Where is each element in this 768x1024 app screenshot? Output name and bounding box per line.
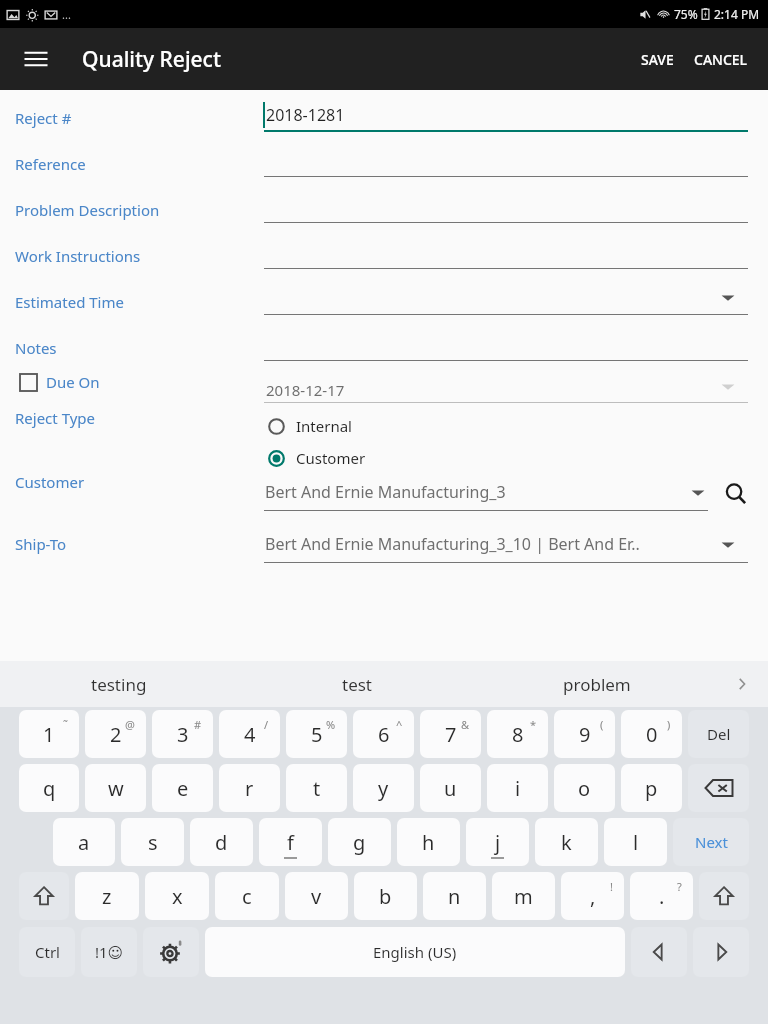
button[interactable]: i xyxy=(487,764,548,812)
button[interactable]: Keyboard settings xyxy=(143,927,199,977)
button[interactable]: e xyxy=(152,764,213,812)
button[interactable]: 5 xyxy=(286,710,347,758)
button[interactable] xyxy=(264,194,748,224)
button[interactable]: Move cursor right xyxy=(693,927,749,977)
staticText: & xyxy=(461,717,470,732)
staticText: Reject Type xyxy=(15,408,96,428)
staticText: Internal xyxy=(296,416,352,436)
staticText: , xyxy=(590,883,596,910)
staticText: Estimated Time xyxy=(15,292,124,312)
staticText: Work Instructions xyxy=(15,246,141,266)
staticText: u xyxy=(444,775,457,802)
button[interactable]: r xyxy=(219,764,280,812)
button[interactable]: n xyxy=(423,872,486,920)
button[interactable]: q xyxy=(19,764,79,812)
button[interactable]: w xyxy=(85,764,146,812)
button[interactable]: Ctrl xyxy=(19,927,75,977)
button[interactable]: b xyxy=(354,872,417,920)
staticText: m xyxy=(514,883,533,910)
staticText: 2:14 PM xyxy=(714,6,760,22)
button[interactable] xyxy=(264,286,748,316)
button[interactable]: 9 xyxy=(554,710,615,758)
button[interactable]: u xyxy=(420,764,481,812)
button[interactable]: English (US) xyxy=(205,927,625,977)
staticText: * xyxy=(530,717,537,732)
button[interactable]: More suggestions xyxy=(716,661,768,707)
button[interactable]: h xyxy=(397,818,460,866)
button[interactable]: !1☺ xyxy=(81,927,137,977)
button[interactable]: a xyxy=(53,818,115,866)
button[interactable]: 7 xyxy=(420,710,481,758)
button[interactable] xyxy=(264,332,748,362)
staticText: # xyxy=(194,717,202,732)
button[interactable]: 4 xyxy=(219,710,280,758)
staticText: 5 xyxy=(311,721,323,748)
button[interactable]: o xyxy=(554,764,615,812)
button[interactable] xyxy=(264,148,748,178)
staticText: 2018-1281 xyxy=(266,104,345,126)
staticText: ? xyxy=(677,879,682,894)
button[interactable]: CANCEL xyxy=(688,40,754,79)
button[interactable]: SAVE xyxy=(635,40,680,79)
staticText: 4 xyxy=(244,721,256,748)
button[interactable]: , xyxy=(561,872,624,920)
button[interactable]: m xyxy=(492,872,555,920)
button[interactable]: x xyxy=(145,872,209,920)
button[interactable]: d xyxy=(190,818,253,866)
button[interactable]: j xyxy=(466,818,529,866)
staticText: ^ xyxy=(396,717,403,732)
button[interactable]: g xyxy=(328,818,391,866)
staticText: w xyxy=(108,775,124,802)
button[interactable]: f xyxy=(259,818,322,866)
staticText: h xyxy=(422,829,435,856)
staticText: 0 xyxy=(646,721,658,748)
button[interactable]: l xyxy=(604,818,667,866)
staticText: s xyxy=(148,829,158,856)
button[interactable]: p xyxy=(621,764,682,812)
button[interactable]: testing xyxy=(0,661,238,707)
button[interactable]: . xyxy=(630,872,693,920)
button[interactable]: Move cursor left xyxy=(631,927,687,977)
staticText: Bert And Ernie Manufacturing_3 xyxy=(265,481,685,503)
staticText: o xyxy=(578,775,591,802)
staticText: r xyxy=(245,775,254,802)
button[interactable] xyxy=(264,530,748,564)
button[interactable]: z xyxy=(75,872,139,920)
button[interactable]: Customer xyxy=(264,444,370,472)
staticText: p xyxy=(645,775,658,802)
button[interactable]: 3 xyxy=(152,710,213,758)
button[interactable] xyxy=(264,130,748,162)
staticText: ... xyxy=(62,7,71,22)
button[interactable]: k xyxy=(535,818,598,866)
button[interactable]: v xyxy=(285,872,348,920)
staticText: SAVE xyxy=(641,50,674,69)
button[interactable]: c xyxy=(215,872,279,920)
staticText: l xyxy=(633,829,639,856)
button[interactable] xyxy=(264,240,748,270)
button[interactable]: Shift xyxy=(19,872,69,920)
button[interactable]: Internal xyxy=(264,412,356,440)
button[interactable]: t xyxy=(286,764,347,812)
button[interactable]: 1 xyxy=(19,710,79,758)
button[interactable]: Backspace xyxy=(688,764,749,812)
button[interactable]: Search customer xyxy=(716,474,756,514)
button[interactable]: 0 xyxy=(621,710,682,758)
button[interactable]: 6 xyxy=(353,710,414,758)
staticText: q xyxy=(43,775,56,802)
button[interactable] xyxy=(264,476,704,510)
button[interactable]: Next xyxy=(673,818,749,866)
button[interactable]: y xyxy=(353,764,414,812)
staticText: Problem Description xyxy=(15,200,160,220)
staticText: . xyxy=(659,883,665,910)
button[interactable]: Open navigation menu xyxy=(14,37,58,81)
staticText: 8 xyxy=(512,721,524,748)
button[interactable]: Del xyxy=(688,710,749,758)
button[interactable]: Shift xyxy=(699,872,749,920)
button[interactable]: 2 xyxy=(85,710,146,758)
staticText: Customer xyxy=(296,448,366,468)
button[interactable]: s xyxy=(121,818,184,866)
button[interactable]: Due On xyxy=(20,372,106,392)
button[interactable]: test xyxy=(238,661,477,707)
button[interactable]: 8 xyxy=(487,710,548,758)
button[interactable]: problem xyxy=(477,661,716,707)
